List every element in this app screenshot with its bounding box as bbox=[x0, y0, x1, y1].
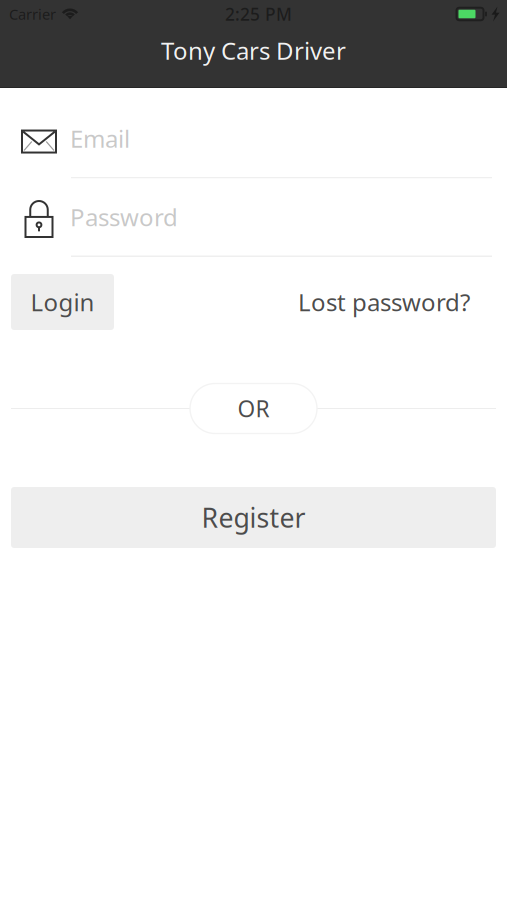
staticText: Lost password? bbox=[298, 286, 470, 318]
button[interactable]: Lost password? bbox=[288, 274, 480, 330]
button[interactable]: Login bbox=[11, 274, 114, 330]
staticText: 2:25 PM bbox=[225, 2, 292, 25]
button[interactable]: Password bbox=[0, 178, 507, 257]
staticText: Login bbox=[30, 286, 94, 318]
staticText: Register bbox=[201, 500, 305, 535]
staticText: Tony Cars Driver bbox=[161, 35, 346, 66]
button[interactable]: Email bbox=[0, 100, 507, 178]
staticText: Password bbox=[70, 201, 178, 233]
staticText: Email bbox=[70, 123, 130, 154]
staticText: OR bbox=[237, 393, 269, 423]
button[interactable]: Register bbox=[11, 487, 496, 548]
staticText: Carrier bbox=[9, 4, 56, 24]
